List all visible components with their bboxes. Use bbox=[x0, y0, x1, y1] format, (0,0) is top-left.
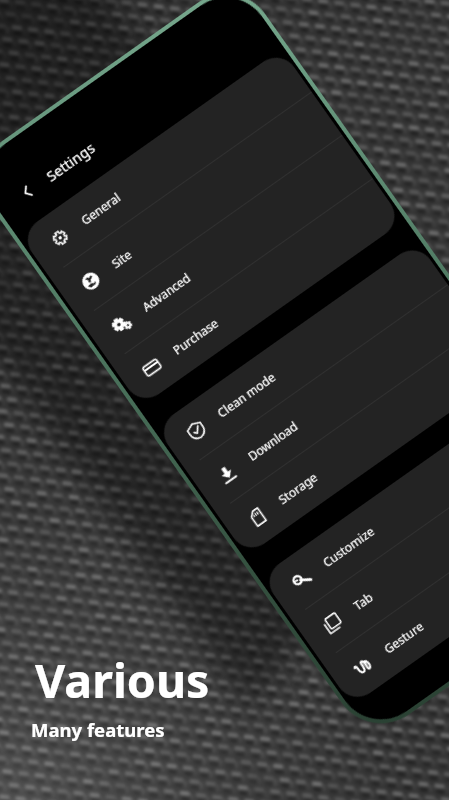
staticText: Advanced bbox=[139, 269, 194, 315]
staticText: Site bbox=[108, 246, 135, 271]
button[interactable]: Site bbox=[50, 92, 342, 320]
staticText: Various bbox=[35, 648, 210, 711]
button[interactable]: Storage bbox=[217, 328, 449, 556]
button[interactable]: Gesture bbox=[322, 478, 449, 705]
button[interactable]: Customize bbox=[261, 391, 449, 619]
button[interactable]: Tab bbox=[292, 434, 449, 662]
button[interactable]: Advanced bbox=[80, 136, 373, 363]
staticText: Download bbox=[245, 417, 301, 464]
button[interactable]: General bbox=[19, 49, 311, 277]
staticText: Purchase bbox=[169, 315, 221, 358]
button[interactable]: Clean mode bbox=[155, 242, 448, 469]
staticText: Gesture bbox=[381, 618, 427, 657]
staticText: Settings bbox=[42, 137, 99, 186]
staticText: Customize bbox=[320, 522, 378, 570]
button[interactable]: Purchase bbox=[111, 179, 403, 407]
staticText: Many features bbox=[31, 717, 165, 742]
staticText: Tab bbox=[350, 589, 376, 613]
staticText: General bbox=[78, 189, 124, 228]
button[interactable]: Back bbox=[13, 178, 41, 206]
staticText: Storage bbox=[275, 469, 320, 507]
staticText: Clean mode bbox=[214, 368, 279, 421]
button[interactable]: Download bbox=[186, 285, 449, 513]
